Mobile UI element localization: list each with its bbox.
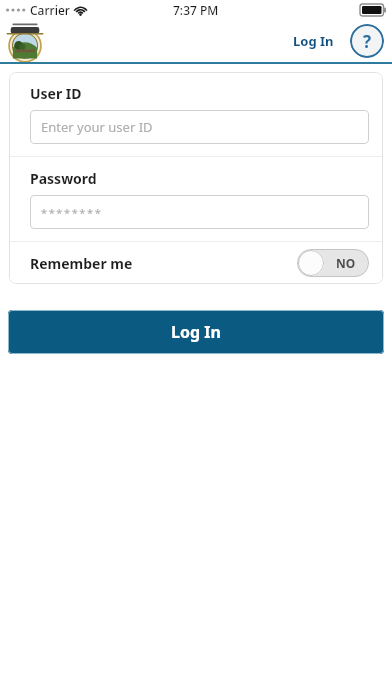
- button[interactable]: Log In: [8, 310, 384, 354]
- staticText: NO: [336, 255, 356, 271]
- staticText: Enter your user ID: [41, 118, 153, 136]
- staticText: ********: [41, 205, 103, 220]
- staticText: Log In: [171, 321, 221, 343]
- staticText: ?: [363, 30, 372, 53]
- staticText: Password: [30, 169, 97, 188]
- staticText: 7:37 PM: [173, 2, 219, 18]
- button[interactable]: ********: [30, 195, 369, 229]
- other: Remember me toggle, off: [297, 249, 369, 277]
- staticText: Log In: [293, 32, 334, 50]
- staticText: Remember me: [30, 254, 133, 273]
- button[interactable]: Log In: [287, 26, 340, 56]
- staticText: User ID: [30, 84, 82, 103]
- button[interactable]: Help: [350, 24, 384, 58]
- staticText: Carrier: [30, 2, 70, 18]
- button[interactable]: Remember me: [9, 242, 383, 284]
- button[interactable]: Enter your user ID: [30, 110, 369, 144]
